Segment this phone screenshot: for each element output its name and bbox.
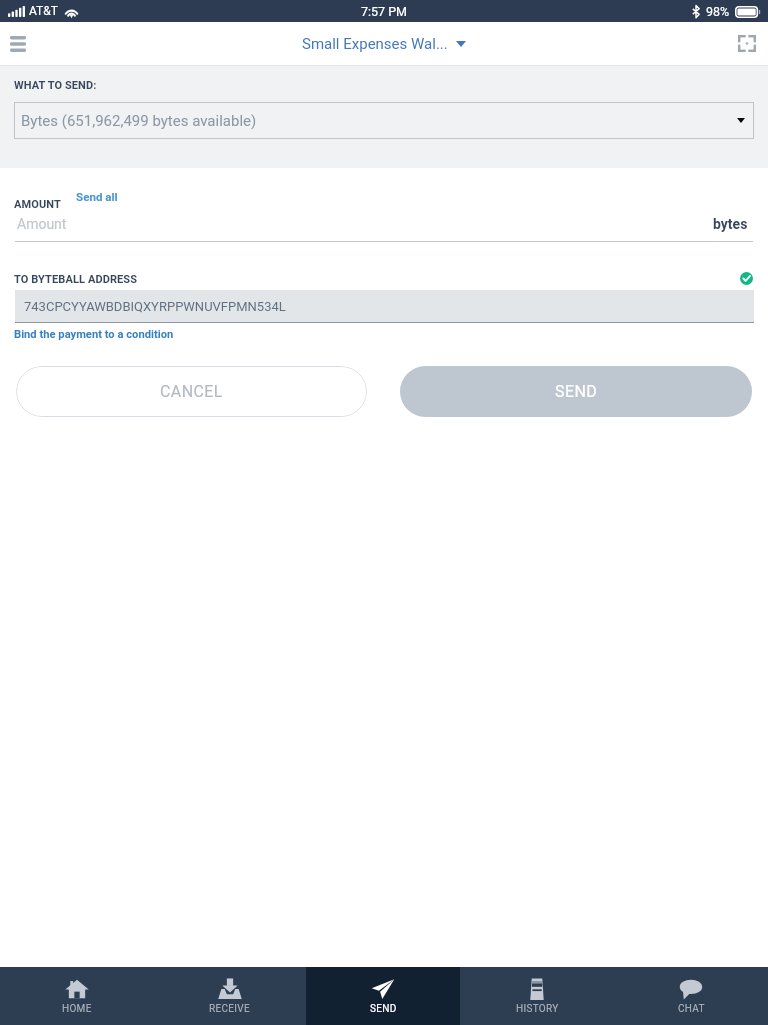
staticText: Amount <box>17 216 67 232</box>
button[interactable]: CANCEL <box>16 366 367 417</box>
staticText: 743CPCYYAWBDBIQXYRPPWNUVFPMN534L <box>24 299 286 314</box>
staticText: SEND <box>555 382 598 401</box>
button[interactable]: SEND <box>400 366 752 417</box>
button[interactable]: Scan QR code <box>724 22 768 66</box>
staticText: AMOUNT <box>14 198 61 211</box>
staticText: Bytes (651,962,499 bytes available) <box>21 112 257 130</box>
button[interactable]: Send all <box>74 186 120 208</box>
staticText: bytes <box>713 216 748 232</box>
button[interactable]: HOME <box>0 967 153 1025</box>
staticText: Bind the payment to a condition <box>14 328 174 341</box>
button[interactable]: 743CPCYYAWBDBIQXYRPPWNUVFPMN534L <box>15 290 754 322</box>
staticText: SEND <box>370 1003 397 1015</box>
staticText: RECEIVE <box>209 1003 250 1015</box>
staticText: Send all <box>76 190 118 204</box>
staticText: 98% <box>706 4 730 19</box>
staticText: 7:57 PM <box>361 4 408 19</box>
button[interactable]: Amount <box>15 210 753 242</box>
staticText: CHAT <box>678 1003 705 1015</box>
button[interactable]: HISTORY <box>460 967 614 1025</box>
button[interactable]: RECEIVE <box>153 967 306 1025</box>
button[interactable]: CHAT <box>614 967 768 1025</box>
staticText: HOME <box>62 1003 92 1015</box>
button[interactable]: Small Expenses Wal... <box>302 35 466 53</box>
staticText: AT&T <box>29 4 58 18</box>
button[interactable]: Bytes (651,962,499 bytes available) <box>14 102 754 139</box>
staticText: Small Expenses Wal... <box>302 35 448 53</box>
button[interactable]: SEND <box>306 967 460 1025</box>
staticText: CANCEL <box>160 382 223 401</box>
staticText: HISTORY <box>516 1003 559 1015</box>
staticText: WHAT TO SEND: <box>14 79 97 92</box>
button[interactable]: Bind the payment to a condition <box>12 324 176 345</box>
button[interactable]: Open navigation menu <box>0 22 36 66</box>
staticText: TO BYTEBALL ADDRESS <box>14 273 138 286</box>
